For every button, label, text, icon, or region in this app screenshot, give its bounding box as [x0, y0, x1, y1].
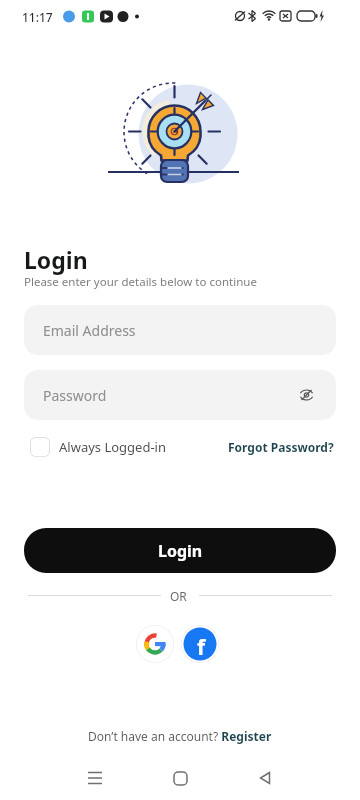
staticText: 11:17: [22, 9, 53, 25]
button[interactable]: Forgot Password?: [228, 439, 334, 455]
button[interactable]: Email Address: [24, 305, 336, 355]
staticText: OR: [170, 588, 187, 604]
button[interactable]: [249, 762, 281, 794]
staticText: Password: [43, 386, 107, 405]
button[interactable]: Don’t have an account? Register: [88, 728, 272, 744]
staticText: Please enter your details below to conti…: [24, 274, 257, 290]
staticText: Email Address: [43, 321, 136, 340]
button[interactable]: Always Logged-in: [30, 437, 166, 457]
staticText: Login: [158, 540, 203, 562]
staticText: Login: [24, 244, 88, 275]
button[interactable]: [164, 762, 196, 794]
button[interactable]: Login: [24, 528, 336, 573]
button[interactable]: f: [181, 625, 219, 663]
button[interactable]: [136, 625, 174, 663]
staticText: Always Logged-in: [59, 438, 166, 456]
button[interactable]: Password: [24, 370, 336, 420]
button[interactable]: [79, 762, 111, 794]
staticText: f: [197, 633, 206, 662]
